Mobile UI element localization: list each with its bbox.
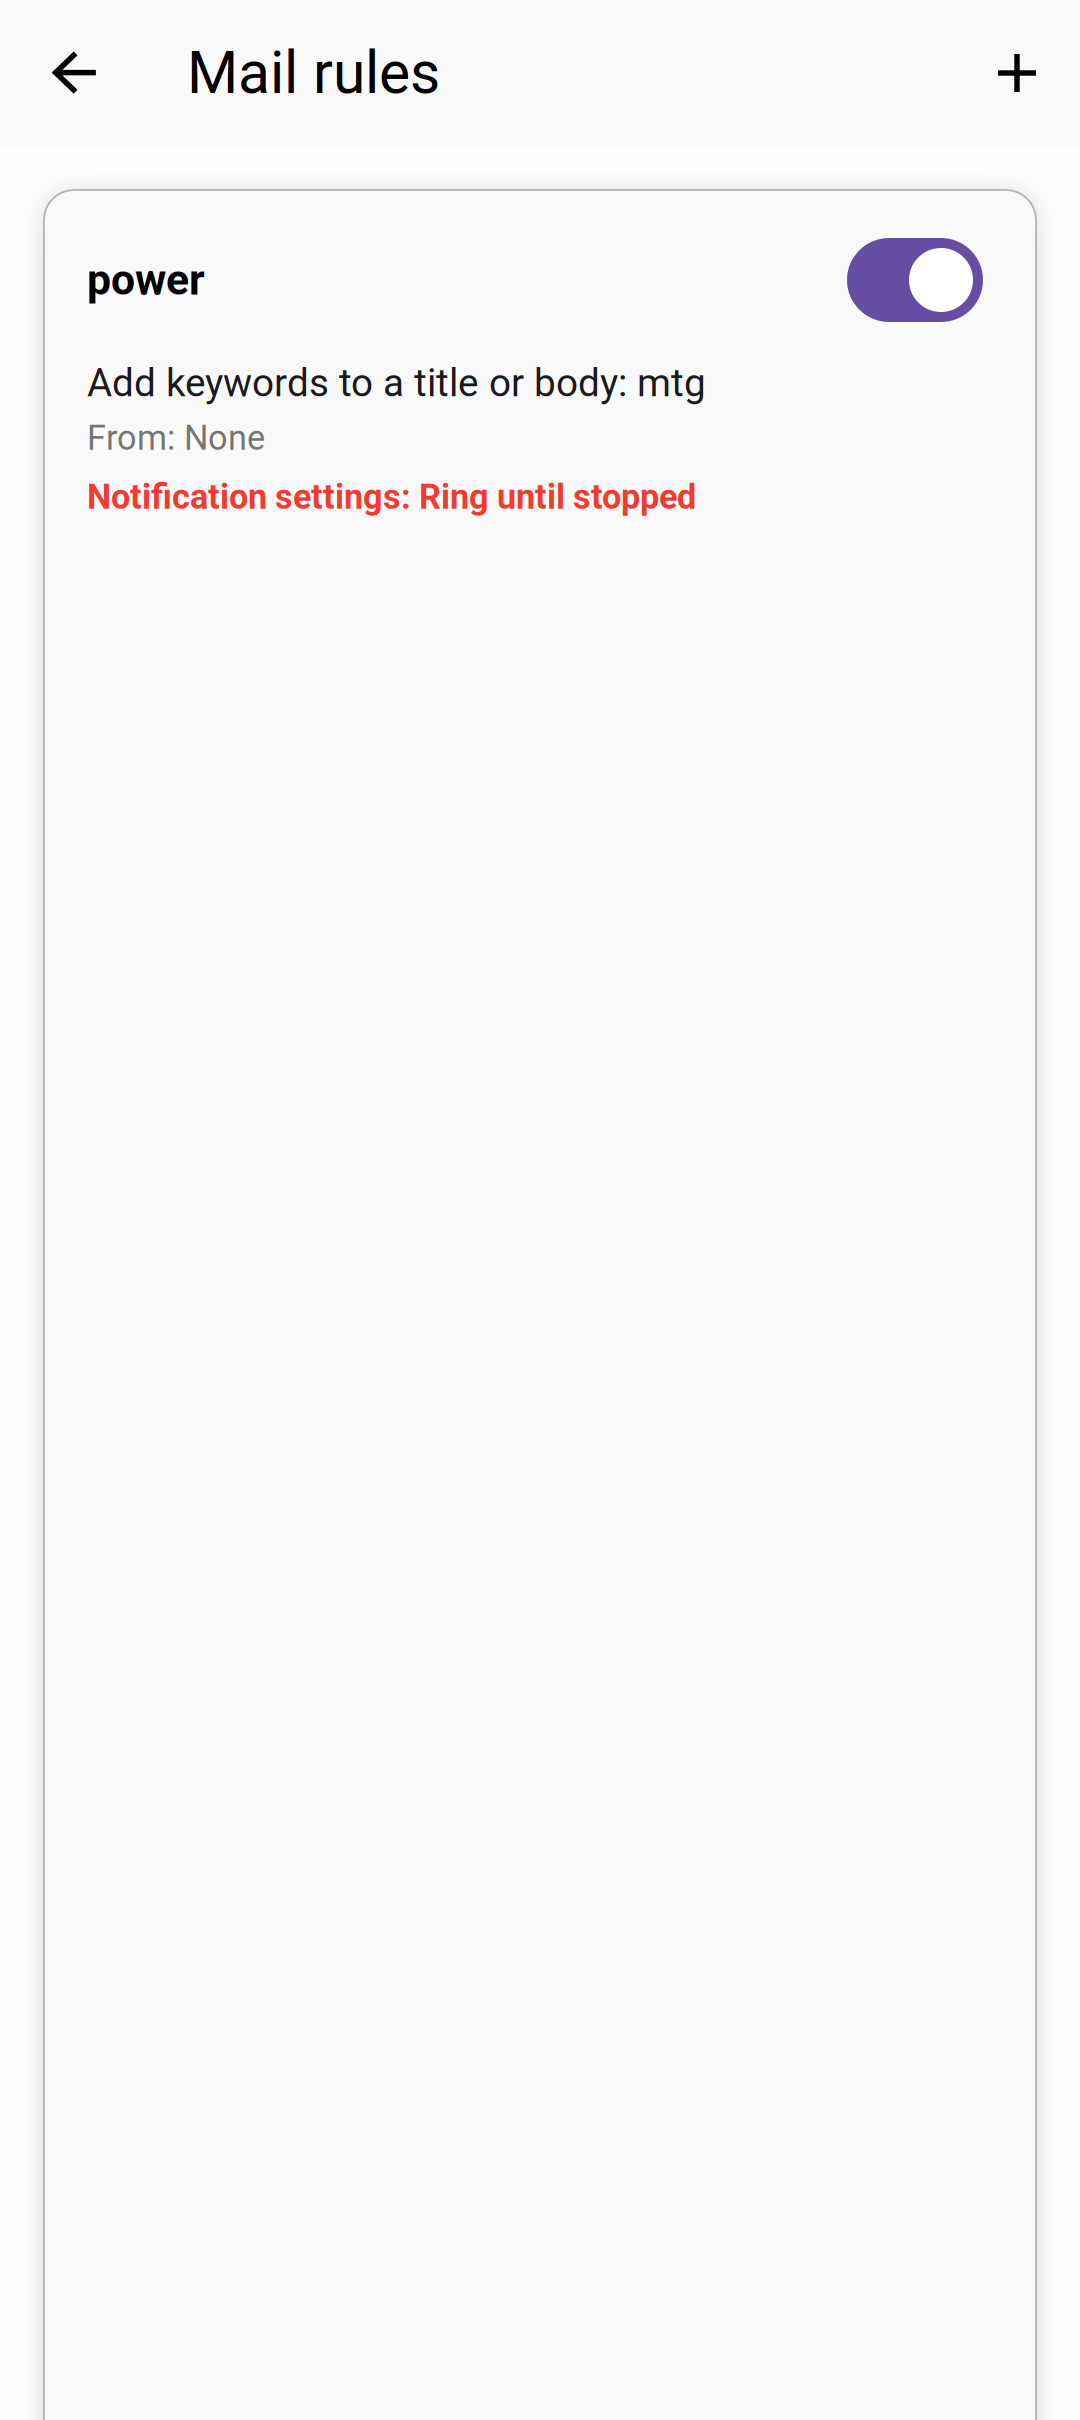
- button[interactable]: Add rule: [954, 0, 1080, 146]
- button[interactable]: Add keywords to a title or body: mtg: [87, 363, 983, 512]
- button[interactable]: Back: [0, 0, 150, 146]
- staticText: From: None: [87, 418, 265, 458]
- staticText: Mail rules: [187, 39, 440, 107]
- staticText: Notification settings: Ring until stoppe…: [87, 477, 696, 517]
- staticText: Add keywords to a title or body: mtg: [87, 360, 706, 406]
- staticText: power: [87, 255, 205, 305]
- button[interactable]: Rule enabled: [847, 238, 983, 322]
